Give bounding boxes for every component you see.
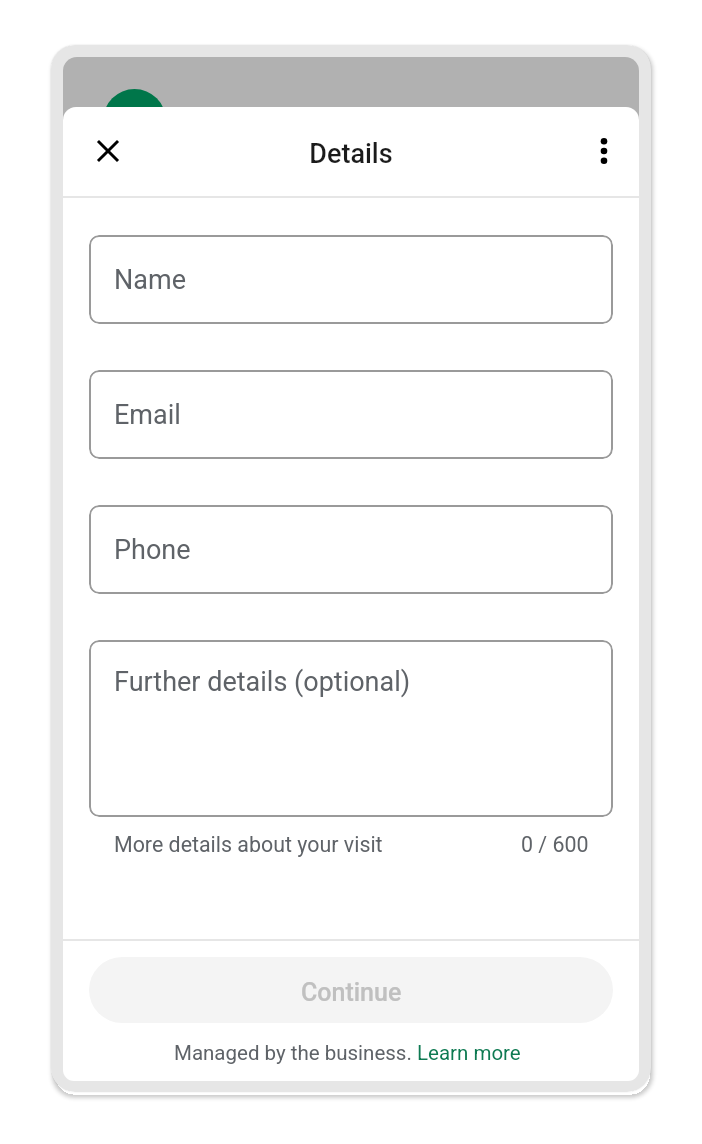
staticText: Name [114,264,186,296]
button[interactable]: Phone [89,505,613,594]
button[interactable]: Learn more [417,1041,521,1065]
staticText: 0 / 600 [521,832,589,857]
button[interactable]: More options [576,123,632,179]
button[interactable]: Name [89,235,613,324]
staticText: Details [63,138,639,170]
staticText: Phone [114,534,191,566]
button[interactable]: Email [89,370,613,459]
button[interactable]: Further details (optional) [89,640,613,817]
staticText: Continue [301,978,402,1007]
staticText: Learn more [417,1041,521,1065]
staticText: Further details (optional) [114,666,411,698]
button[interactable]: Continue [89,957,613,1023]
staticText: Managed by the business. [174,1041,417,1065]
staticText: Email [114,399,181,431]
staticText: More details about your visit [114,832,383,857]
button[interactable]: Close [80,123,136,179]
